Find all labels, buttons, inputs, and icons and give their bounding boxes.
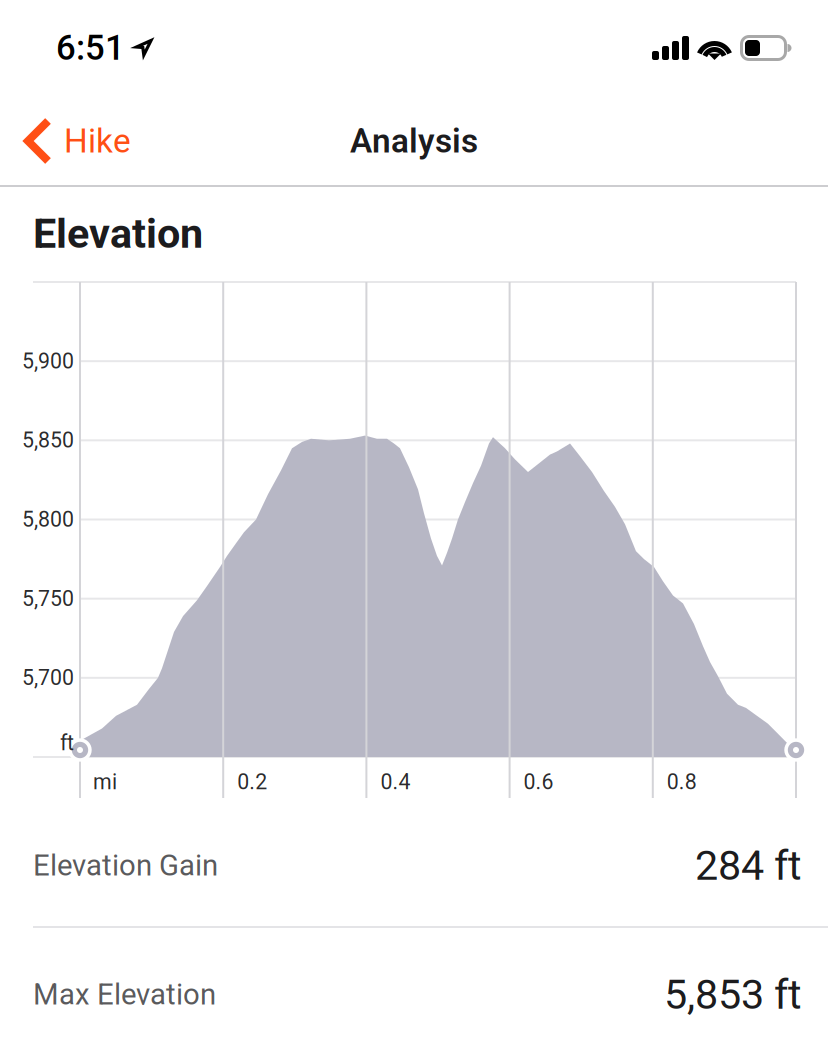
staticText: 5,750 xyxy=(22,586,74,611)
staticText: Elevation xyxy=(33,209,203,258)
staticText: 5,800 xyxy=(22,507,74,532)
staticText: 5,900 xyxy=(22,349,74,374)
staticText: 6:51 xyxy=(56,28,125,68)
staticText: Elevation Gain xyxy=(33,848,218,883)
staticText: 284 ft xyxy=(695,841,802,890)
staticText: Analysis xyxy=(350,121,478,161)
staticText: Max Elevation xyxy=(33,977,216,1012)
staticText: 5,850 xyxy=(22,428,74,453)
staticText: 5,700 xyxy=(22,665,74,690)
staticText: 0.2 xyxy=(237,769,267,794)
staticText: 0.4 xyxy=(380,769,410,794)
staticText: Hike xyxy=(64,121,131,161)
staticText: 0.6 xyxy=(524,769,554,794)
staticText: 5,853 ft xyxy=(664,970,802,1019)
staticText: mi xyxy=(93,769,117,794)
button[interactable]: Hike xyxy=(0,97,155,185)
staticText: ft xyxy=(60,730,74,755)
staticText: 0.8 xyxy=(667,769,697,794)
